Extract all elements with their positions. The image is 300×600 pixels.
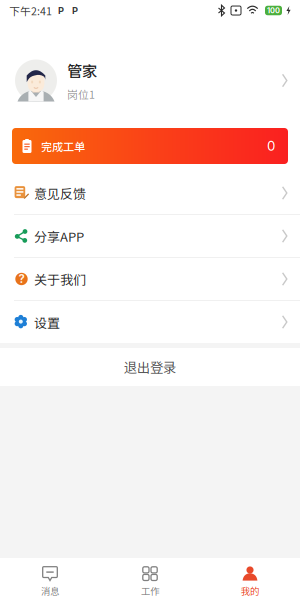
staticText: 工作: [141, 584, 159, 597]
staticText: 消息: [41, 584, 59, 597]
staticText: 意见反馈: [34, 183, 86, 202]
staticText: 分享APP: [34, 226, 84, 245]
staticText: 关于我们: [34, 269, 86, 288]
button[interactable]: 工作: [100, 558, 200, 600]
staticText: 退出登录: [124, 357, 176, 377]
staticText: P: [58, 5, 64, 16]
staticText: 管家: [67, 59, 97, 81]
button[interactable]: 分享APP: [0, 215, 300, 257]
button[interactable]: 完成工单: [12, 128, 288, 164]
staticText: 我的: [241, 584, 259, 597]
button[interactable]: 意见反馈: [0, 172, 300, 214]
staticText: 岗位1: [67, 86, 95, 102]
button[interactable]: 设置: [0, 301, 300, 343]
staticText: P: [72, 5, 78, 16]
button[interactable]: 退出登录: [0, 348, 300, 386]
staticText: ?: [18, 272, 24, 286]
button[interactable]: 管家: [0, 21, 300, 124]
button[interactable]: 消息: [0, 558, 100, 600]
button[interactable]: ?: [0, 258, 300, 300]
staticText: 下午2:41: [9, 3, 52, 18]
staticText: 设置: [34, 312, 60, 331]
button[interactable]: 我的: [200, 558, 300, 600]
staticText: 100: [267, 6, 280, 15]
staticText: 完成工单: [41, 138, 85, 154]
staticText: 0: [267, 138, 275, 154]
